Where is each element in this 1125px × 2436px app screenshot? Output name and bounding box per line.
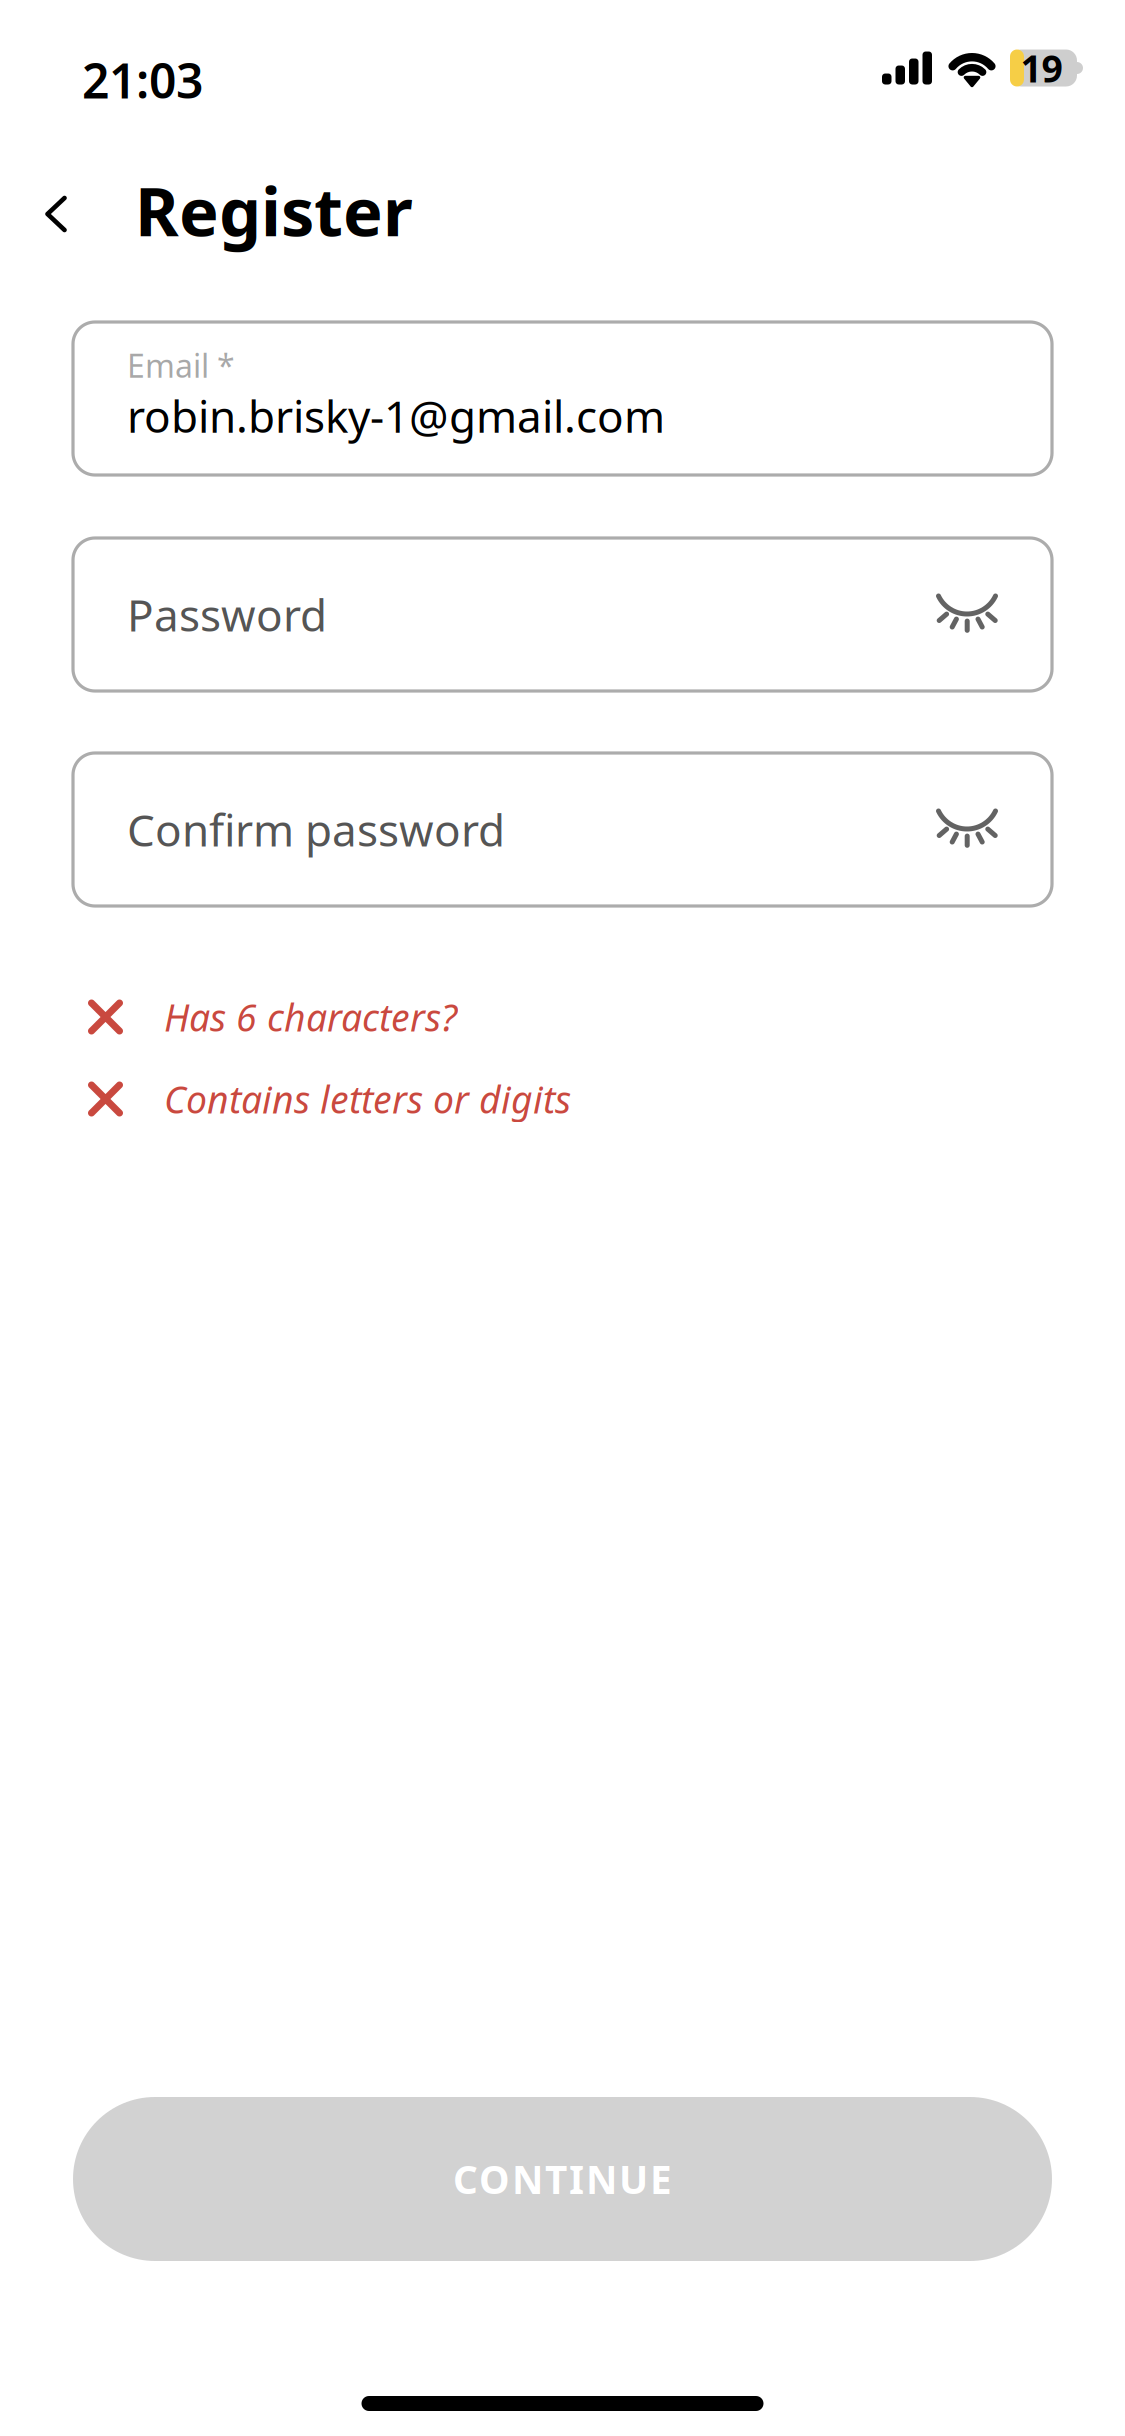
- staticText: Contains letters or digits: [164, 1074, 571, 1124]
- button[interactable]: Back: [18, 168, 94, 260]
- staticText: 19: [1020, 43, 1062, 93]
- staticText: robin.brisky-1@gmail.com: [127, 386, 665, 445]
- staticText: Password: [127, 585, 327, 644]
- staticText: Email *: [127, 344, 235, 386]
- button[interactable]: Confirm password: [73, 753, 1052, 906]
- staticText: CONTINUE: [453, 2153, 672, 2205]
- staticText: 21:03: [82, 48, 203, 112]
- button[interactable]: CONTINUE: [73, 2097, 1052, 2261]
- button[interactable]: Email *: [73, 322, 1052, 475]
- staticText: Has 6 characters?: [164, 992, 457, 1042]
- staticText: Confirm password: [127, 800, 505, 859]
- staticText: Register: [135, 166, 413, 254]
- button[interactable]: Password: [73, 538, 1052, 691]
